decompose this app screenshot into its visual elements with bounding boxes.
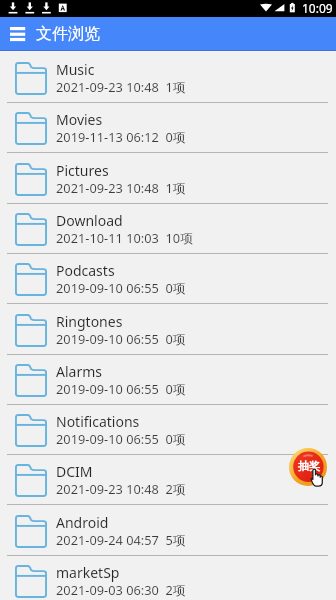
staticText: Alarms (56, 362, 102, 381)
button[interactable]: Podcasts (0, 254, 336, 304)
staticText: 2019-09-10 06:55 0项 (56, 330, 186, 347)
staticText: 2019-09-10 06:55 0项 (56, 380, 186, 397)
staticText: Music (56, 60, 95, 79)
button[interactable]: Download (0, 204, 336, 254)
staticText: 文件浏览 (36, 24, 100, 44)
staticText: 2019-09-10 06:55 0项 (56, 279, 186, 296)
staticText: Notifications (56, 412, 140, 431)
button[interactable]: Menu (0, 17, 35, 51)
staticText: 2021-09-24 04:57 5项 (56, 531, 186, 548)
staticText: 抽奖 (298, 459, 320, 473)
button[interactable]: Movies (0, 103, 336, 153)
staticText: marketSp (56, 563, 120, 582)
button[interactable]: Android (0, 506, 336, 556)
button[interactable]: Notifications (0, 405, 336, 455)
staticText: 2019-09-10 06:55 0项 (56, 430, 186, 447)
staticText: 2019-11-13 06:12 0项 (56, 128, 186, 145)
staticText: DCIM (56, 462, 93, 481)
staticText: 2021-09-03 06:30 2项 (56, 581, 186, 598)
button[interactable]: Ringtones (0, 305, 336, 355)
button[interactable]: marketSp (0, 556, 336, 600)
staticText: 10:09 (302, 0, 333, 16)
button[interactable]: Alarms (0, 355, 336, 405)
button[interactable]: Pictures (0, 154, 336, 204)
button[interactable]: 抽奖 (288, 448, 328, 486)
staticText: 2021-10-11 10:03 10项 (56, 229, 193, 246)
staticText: Movies (56, 110, 103, 129)
button[interactable]: Music (0, 53, 336, 103)
staticText: Ringtones (56, 312, 123, 331)
staticText: 2021-09-23 10:48 2项 (56, 480, 186, 497)
button[interactable]: DCIM (0, 455, 336, 505)
staticText: Android (56, 513, 109, 532)
staticText: Podcasts (56, 261, 115, 280)
staticText: Download (56, 211, 123, 230)
staticText: 2021-09-23 10:48 1项 (56, 78, 186, 95)
staticText: Pictures (56, 161, 109, 180)
staticText: 2021-09-23 10:48 1项 (56, 179, 186, 196)
